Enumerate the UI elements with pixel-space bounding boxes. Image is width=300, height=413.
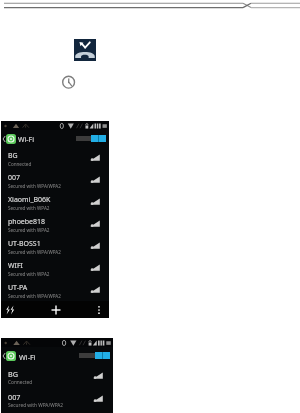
button[interactable]: Xiaomi_B06K [1, 191, 109, 213]
staticText: Secured with WPA2 [8, 271, 50, 277]
staticText: Secured with WPA2 [8, 205, 50, 211]
button[interactable]: UT-PA [1, 279, 109, 301]
staticText: 007 [8, 173, 21, 183]
staticText: phoebe818 [8, 217, 46, 227]
button[interactable]: BG [1, 365, 113, 388]
staticText: Secured with WPA/WPA2 [8, 249, 61, 255]
staticText: 007 [8, 392, 21, 402]
staticText: Connected [8, 161, 32, 167]
button[interactable]: Missed call [74, 39, 96, 61]
staticText: Wi-Fi [18, 135, 35, 145]
staticText: Secured with WPA/WPA2 [8, 183, 61, 189]
staticText: Secured with WPA/WPA2 [8, 293, 61, 299]
button[interactable]: Wi-Fi on [76, 134, 106, 142]
button[interactable]: WPS [5, 305, 17, 315]
staticText: BG [8, 151, 18, 161]
staticText: BG [8, 369, 19, 379]
button[interactable]: Add network [51, 305, 61, 315]
button[interactable]: BG [1, 147, 109, 169]
staticText: Secured with WPA/WPA2 [8, 402, 64, 409]
button[interactable]: UT-BOSS1 [1, 235, 109, 257]
staticText: Secured with WPA2 [8, 227, 50, 233]
button[interactable]: Wi-Fi on [79, 351, 110, 359]
button[interactable]: 007 [1, 388, 113, 411]
staticText: Wi-Fi [19, 352, 36, 362]
staticText: Connected [8, 379, 33, 386]
staticText: WIFI [8, 261, 23, 271]
button[interactable]: More options [95, 305, 103, 315]
staticText: UT-PA [8, 283, 28, 293]
button[interactable]: 007 [1, 169, 109, 191]
staticText: Xiaomi_B06K [8, 195, 51, 205]
button[interactable]: Recent calls [62, 76, 76, 90]
staticText: UT-BOSS1 [8, 239, 41, 249]
button[interactable]: WIFI [1, 257, 109, 279]
button[interactable]: phoebe818 [1, 213, 109, 235]
